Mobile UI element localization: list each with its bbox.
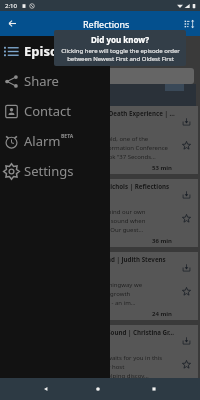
staticText: The Podcast Ep 139 - The Long Road | Jud…: [6, 255, 166, 263]
button[interactable]: Did you know?: [54, 30, 186, 66]
button[interactable]: Settings: [0, 156, 110, 186]
button[interactable]: Download: [182, 336, 191, 345]
button[interactable]: The Podcast Episode 140 - Sarah Nichols …: [0, 179, 200, 252]
staticText: Inspired by the wisdom of Edgar Hemingwa…: [6, 281, 143, 307]
button[interactable]: Favourite: [182, 360, 191, 369]
staticText: 24 min: [6, 310, 172, 318]
button[interactable]: Home: [94, 385, 102, 393]
button[interactable]: Favourite: [182, 287, 191, 296]
staticText: Settings: [24, 162, 74, 180]
staticText: The Podcast Episode 141 - A Near Death E…: [6, 109, 178, 117]
button[interactable]: Contact: [0, 96, 110, 126]
staticText: 41 min: [6, 383, 172, 391]
staticText: BETA: [61, 133, 74, 140]
button[interactable]: Favourite: [182, 141, 191, 150]
button[interactable]: Download: [182, 190, 191, 199]
staticText: Clicking here will toggle the episode or…: [61, 47, 180, 63]
button[interactable]: Back: [7, 18, 18, 29]
staticText: We are diving deep into the truth behind…: [6, 208, 146, 234]
staticText: Contact: [24, 102, 72, 120]
staticText: In this new episode we talk with Arnold,…: [6, 135, 168, 161]
button[interactable]: Sort order: [184, 18, 196, 30]
button[interactable]: Favourite: [182, 214, 191, 223]
staticText: Share: [24, 72, 59, 90]
button[interactable]: The Podcast Episode 141 - A Near Death E…: [0, 106, 200, 179]
button[interactable]: The Podcast Episode 138 - Ocean Sound | …: [0, 325, 200, 398]
staticText: Did you know?: [91, 34, 150, 45]
button[interactable]: Share: [0, 66, 110, 96]
staticText: Alarm: [24, 132, 61, 150]
button[interactable]: Download: [182, 117, 191, 126]
button[interactable]: The Podcast Ep 139 - The Long Road | Jud…: [0, 252, 200, 325]
staticText: Episodes: [24, 42, 81, 60]
button[interactable]: Episodes: [0, 36, 110, 66]
staticText: 53 min: [6, 164, 172, 172]
button[interactable]: Back: [42, 385, 50, 393]
staticText: 2:10: [5, 2, 17, 10]
staticText: Reflections: [83, 18, 130, 30]
button[interactable]: Download: [182, 263, 191, 272]
button[interactable]: Alarm: [0, 126, 110, 156]
button[interactable]: Recents: [150, 385, 158, 393]
button[interactable]: [26, 84, 45, 91]
staticText: 36 min: [6, 237, 172, 245]
staticText: The Podcast Episode 138 - Ocean Sound | …: [6, 328, 175, 336]
staticText: Something deepening and vibrant awaits f…: [6, 354, 163, 380]
staticText: The Podcast Episode 140 - Sarah Nichols …: [6, 182, 170, 190]
